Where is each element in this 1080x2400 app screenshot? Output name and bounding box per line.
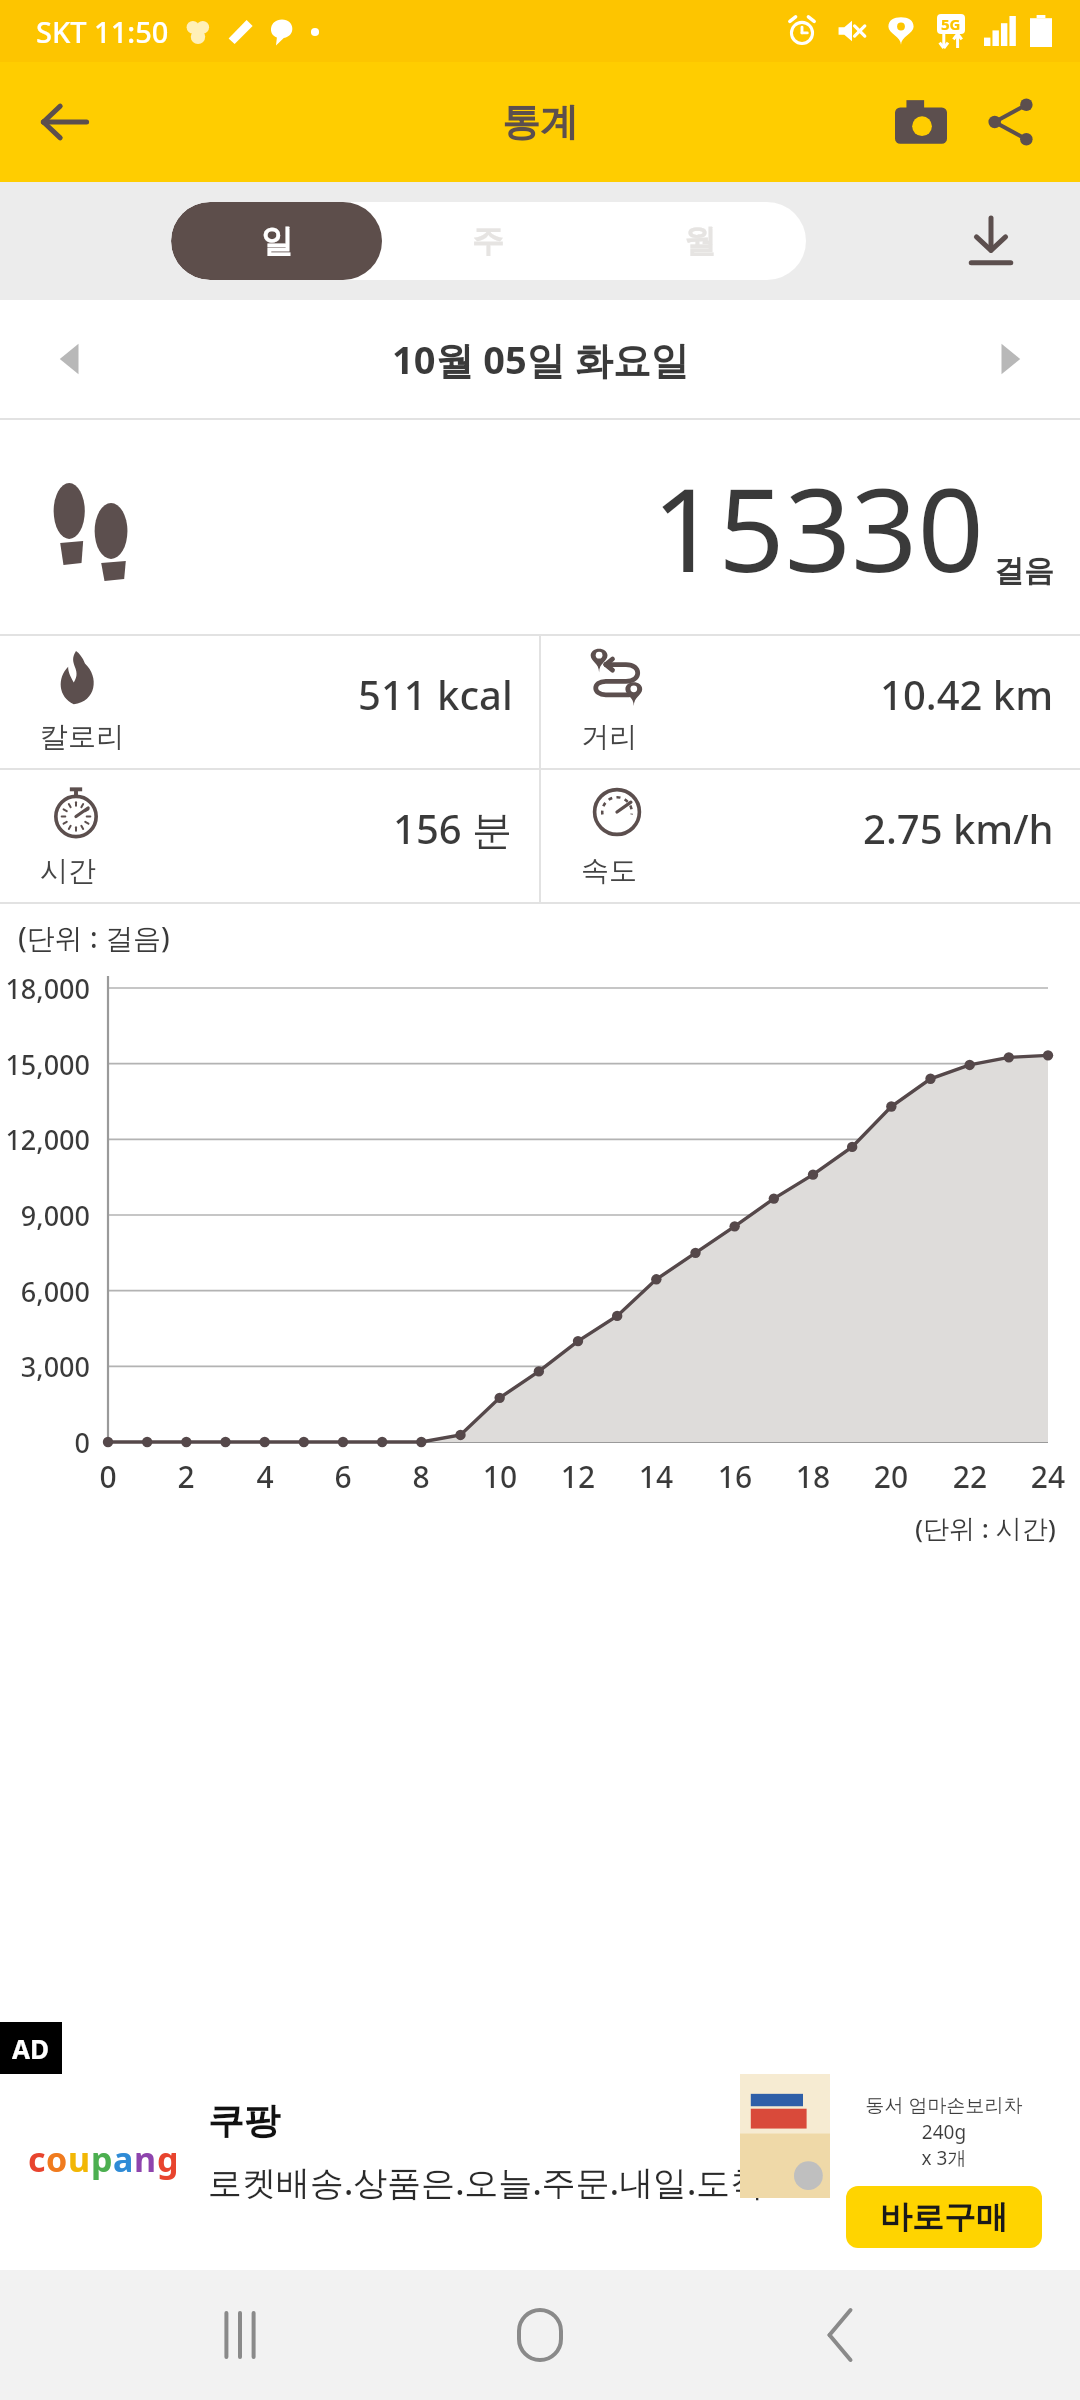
staticText: u — [68, 2136, 91, 2182]
button[interactable]: 주 — [382, 202, 594, 280]
button[interactable]: 15330 — [0, 418, 1080, 636]
staticText: 4 — [239, 1456, 291, 1497]
button[interactable]: 시간 — [0, 770, 539, 902]
staticText: 24 — [1022, 1456, 1074, 1497]
button[interactable]: Share — [968, 79, 1054, 165]
staticText: 쿠팡 — [208, 2098, 280, 2143]
staticText: a — [113, 2136, 134, 2182]
button[interactable]: 속도 — [541, 770, 1080, 902]
staticText: 10 — [474, 1456, 526, 1497]
staticText: 0 — [82, 1456, 134, 1497]
staticText: 동서 엄마손보리차 240g — [844, 2092, 1044, 2145]
button[interactable]: Back — [780, 2275, 900, 2395]
staticText: 8 — [395, 1456, 447, 1497]
staticText: 시간 — [40, 853, 96, 888]
staticText: 156 분 — [393, 801, 513, 856]
staticText: o — [46, 2136, 68, 2182]
button[interactable]: Back — [22, 79, 108, 165]
staticText: 5G — [941, 14, 961, 34]
staticText: 3,000 — [0, 1348, 90, 1385]
staticText: (단위 : 걸음) — [18, 918, 170, 956]
staticText: 통계 — [502, 98, 578, 146]
button[interactable]: Download — [948, 198, 1034, 284]
staticText: 2 — [160, 1456, 212, 1497]
button[interactable]: 거리 — [541, 636, 1080, 768]
staticText: 10.42 km — [880, 667, 1054, 721]
button[interactable]: 일 — [171, 202, 382, 280]
staticText: 주 — [472, 221, 504, 261]
staticText: 바로구매 — [880, 2197, 1008, 2237]
staticText: p — [91, 2136, 113, 2182]
staticText: x 3개 — [844, 2145, 1044, 2171]
staticText: 9,000 — [0, 1197, 90, 1234]
button[interactable]: Home — [480, 2275, 600, 2395]
staticText: c — [28, 2136, 46, 2182]
staticText: 일 — [261, 221, 293, 261]
staticText: 511 kcal — [358, 667, 513, 721]
button[interactable]: Previous day — [30, 319, 110, 399]
staticText: 18 — [787, 1456, 839, 1497]
staticText: 15330 — [652, 448, 984, 606]
button[interactable]: Camera — [878, 79, 964, 165]
staticText: 16 — [709, 1456, 761, 1497]
staticText: 월 — [684, 221, 716, 261]
staticText: n — [134, 2136, 157, 2182]
staticText: 18,000 — [0, 970, 90, 1007]
staticText: 12,000 — [0, 1121, 90, 1158]
button[interactable]: 바로구매 — [846, 2186, 1042, 2248]
staticText: (단위 : 시간) — [915, 1510, 1056, 1546]
staticText: 22 — [944, 1456, 996, 1497]
staticText: 12 — [552, 1456, 604, 1497]
staticText: 걸음 — [994, 552, 1054, 590]
staticText: 0 — [0, 1424, 90, 1461]
button[interactable]: Recents — [180, 2275, 300, 2395]
staticText: 칼로리 — [40, 719, 124, 754]
staticText: AD — [12, 2031, 50, 2066]
staticText: g — [157, 2136, 179, 2182]
button[interactable]: 칼로리 — [0, 636, 539, 768]
staticText: 10월 05일 화요일 — [392, 333, 689, 385]
button[interactable]: 월 — [594, 202, 806, 280]
staticText: 로켓배송.상품은.오늘.주문.내일.도착 — [208, 2159, 765, 2205]
staticText: 6,000 — [0, 1273, 90, 1310]
staticText: 14 — [630, 1456, 682, 1497]
staticText: 거리 — [581, 719, 637, 754]
button[interactable]: AD — [0, 2022, 1080, 2270]
staticText: 20 — [865, 1456, 917, 1497]
staticText: 15,000 — [0, 1046, 90, 1083]
staticText: 6 — [317, 1456, 369, 1497]
staticText: SKT 11:50 — [36, 12, 169, 51]
button[interactable]: Next day — [970, 319, 1050, 399]
staticText: 2.75 km/h — [863, 801, 1054, 855]
staticText: 속도 — [581, 853, 637, 888]
